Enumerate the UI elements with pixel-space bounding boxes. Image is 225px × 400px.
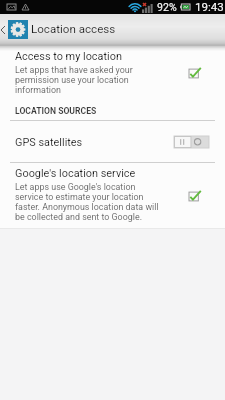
staticText: Let apps that have asked your permission… — [15, 65, 165, 95]
staticText: 19:43 — [195, 0, 224, 14]
staticText: Google's location service — [15, 167, 136, 180]
staticText: Access to my location — [15, 50, 122, 63]
button[interactable]: Google's location service — [0, 163, 225, 228]
staticText: Let apps use Google's location service t… — [15, 182, 165, 222]
button[interactable]: Navigate up — [0, 20, 28, 39]
button[interactable]: Access to my location — [0, 45, 225, 120]
staticText: GPS satellites — [15, 136, 83, 149]
button[interactable]: GPS satellites — [0, 121, 225, 163]
button[interactable]: GPS satellites toggle — [174, 136, 209, 148]
staticText: 92% — [157, 1, 177, 13]
staticText: Location access — [31, 22, 116, 36]
staticText: LOCATION SOURCES — [15, 106, 97, 116]
